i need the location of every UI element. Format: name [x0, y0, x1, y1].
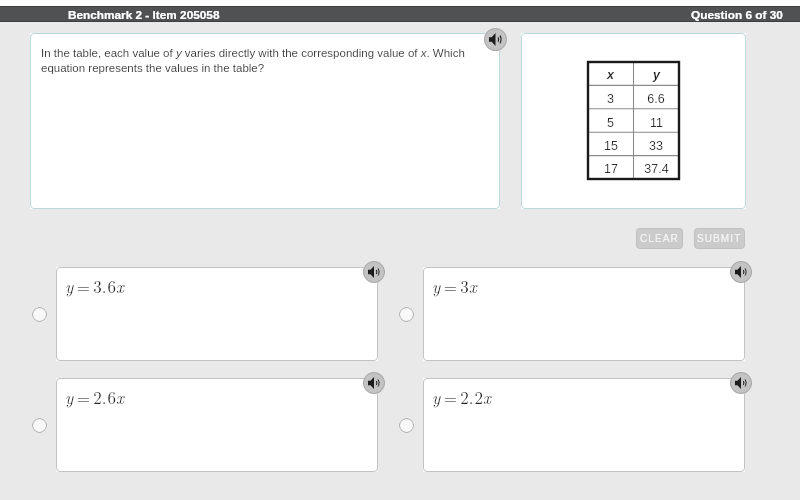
staticText: 3 — [607, 92, 614, 106]
button[interactable]: Select y = 2.2x — [399, 418, 414, 433]
staticText: Benchmark 2 - Item 205058 — [68, 8, 220, 21]
staticText: 11 — [650, 116, 663, 130]
staticText: 37.4 — [644, 162, 669, 176]
button[interactable]: Play audio — [730, 261, 752, 283]
staticText: 6.6 — [647, 92, 665, 106]
staticText: Question 6 of 30 — [691, 8, 783, 21]
staticText: x — [607, 68, 614, 82]
button[interactable]: Play audio — [484, 28, 507, 51]
staticText: SUBMIT — [697, 233, 742, 244]
button[interactable]: Select y = 3x — [399, 307, 414, 322]
staticText: 15 — [604, 139, 618, 153]
button[interactable]: Play audio — [363, 261, 385, 283]
button[interactable]: Play audio — [363, 372, 385, 394]
staticText: In the table, each value of y varies dir… — [41, 47, 465, 75]
staticText: y = 3x — [432, 274, 477, 298]
button[interactable]: y = 3. 6x — [56, 267, 378, 361]
staticText: y — [653, 68, 660, 82]
staticText: y = 2. 2x — [432, 385, 491, 409]
button[interactable]: Select y = 2.6x — [32, 418, 47, 433]
staticText: CLEAR — [640, 233, 679, 244]
button[interactable]: y = 3x — [423, 267, 745, 361]
button[interactable]: y = 2. 6x — [56, 378, 378, 472]
staticText: y = 3. 6x — [65, 274, 124, 298]
button[interactable]: SUBMIT — [694, 228, 745, 249]
button[interactable]: Play audio — [730, 372, 752, 394]
staticText: y = 2. 6x — [65, 385, 124, 409]
staticText: 17 — [604, 162, 618, 176]
staticText: 33 — [649, 139, 663, 153]
button[interactable]: y = 2. 2x — [423, 378, 745, 472]
button[interactable]: In the table, each value of y varies dir… — [30, 33, 500, 209]
button[interactable]: CLEAR — [636, 228, 683, 249]
button[interactable]: Select y = 3.6x — [32, 307, 47, 322]
staticText: 5 — [607, 116, 614, 130]
